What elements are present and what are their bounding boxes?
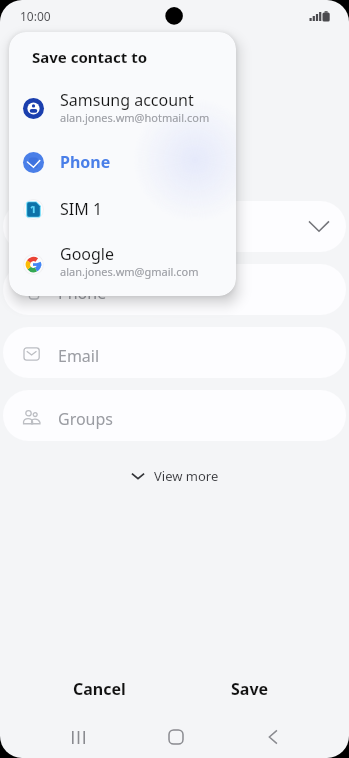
- staticText: Email: [58, 345, 100, 367]
- staticText: Samsung account: [60, 89, 194, 111]
- staticText: SIM 1: [60, 198, 103, 220]
- staticText: Save: [231, 678, 269, 700]
- button[interactable]: Save: [174, 667, 325, 711]
- button[interactable]: Cancel: [24, 667, 174, 711]
- button[interactable]: View more: [118, 459, 231, 493]
- button[interactable]: [23, 199, 44, 220]
- staticText: View more: [154, 467, 219, 485]
- staticText: 10:00: [20, 8, 51, 24]
- staticText: Google: [60, 243, 115, 265]
- button[interactable]: [23, 254, 44, 275]
- button[interactable]: Groups: [3, 390, 346, 441]
- button[interactable]: Home: [146, 716, 206, 758]
- staticText: Cancel: [73, 678, 126, 700]
- button[interactable]: Phone: [3, 264, 346, 315]
- staticText: Save contact to: [32, 47, 148, 67]
- button[interactable]: [23, 152, 44, 173]
- button[interactable]: Email: [3, 327, 346, 378]
- button[interactable]: Back: [243, 716, 303, 758]
- staticText: alan.jones.wm@gmail.com: [60, 264, 199, 279]
- staticText: Groups: [58, 408, 114, 430]
- staticText: alan.jones.wm@hotmail.com: [60, 110, 210, 125]
- button[interactable]: Recents: [48, 716, 108, 758]
- staticText: Phone: [58, 282, 107, 304]
- button[interactable]: [3, 201, 346, 252]
- button[interactable]: [23, 98, 44, 119]
- staticText: Phone: [60, 151, 111, 173]
